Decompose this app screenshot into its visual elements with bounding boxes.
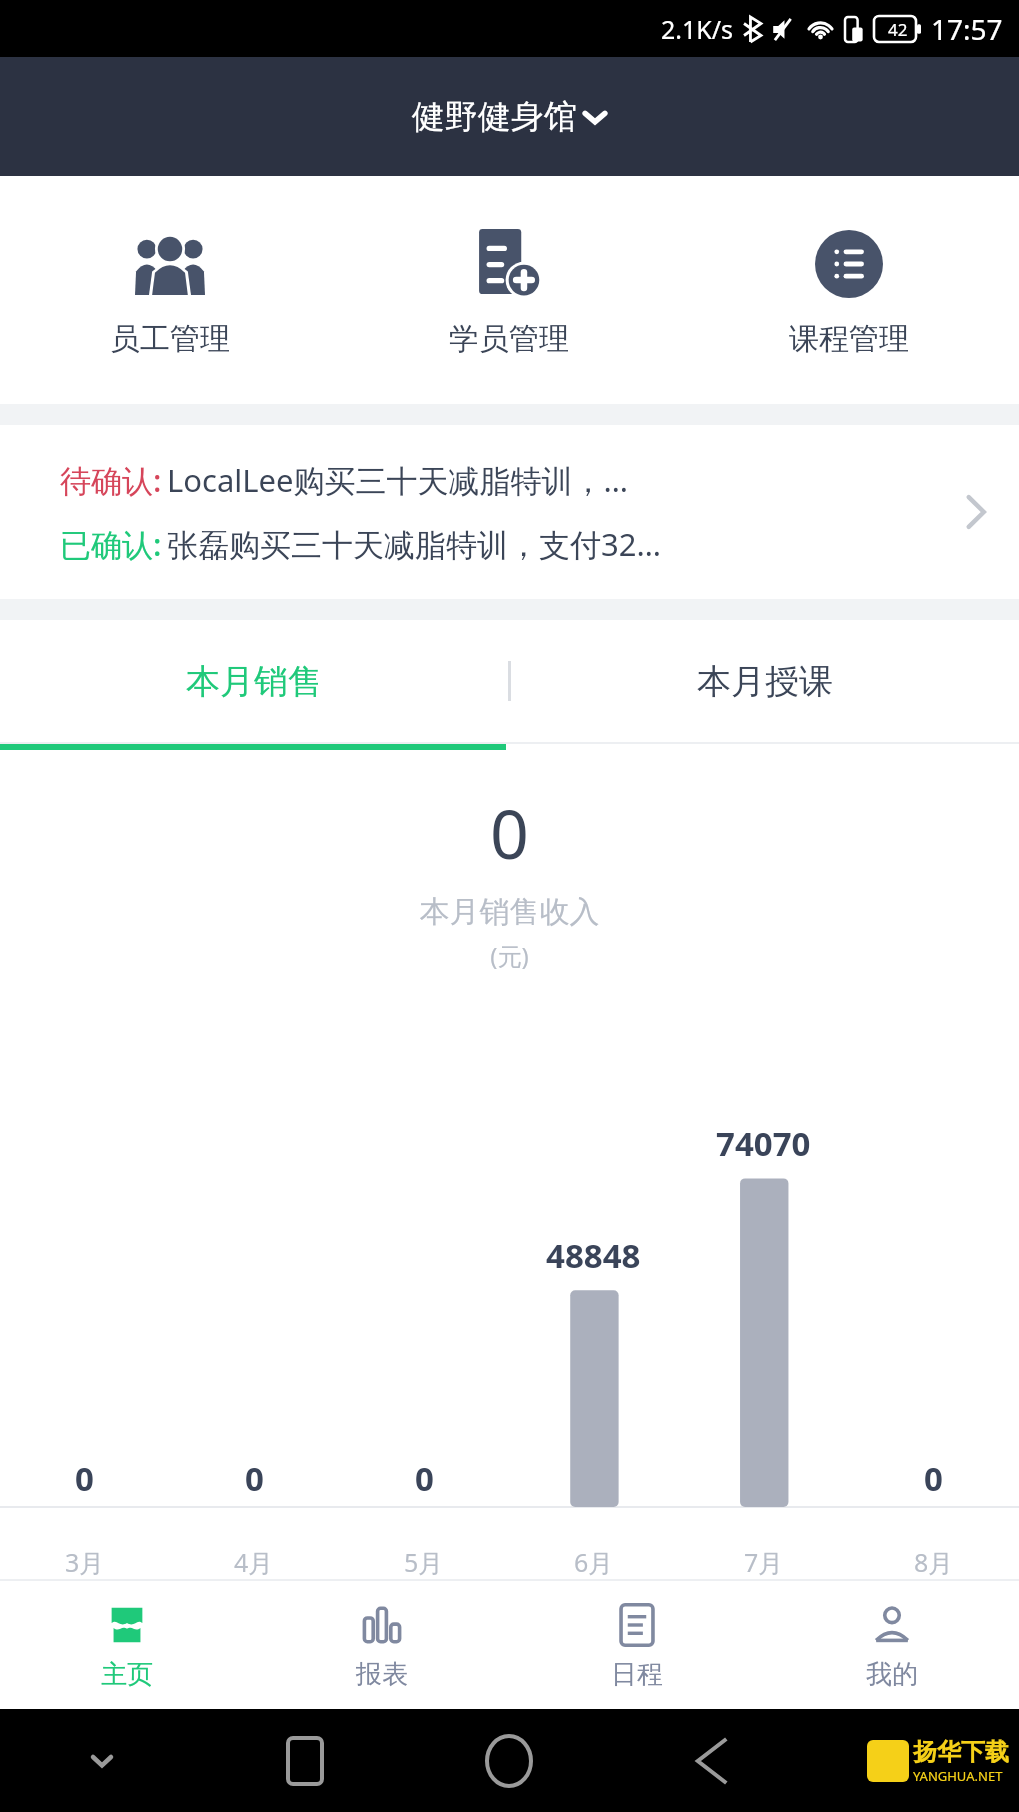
staticText: 扬华下载	[913, 1737, 1009, 1767]
staticText: 17:57	[931, 10, 1003, 48]
staticText: 7月	[744, 1545, 784, 1579]
button[interactable]: 主页	[0, 1581, 254, 1709]
staticText: 3月	[65, 1545, 105, 1579]
button[interactable]: 员工管理	[0, 176, 339, 404]
staticText: YANGHUA.NET	[913, 1767, 1003, 1785]
staticText: 待确认:	[60, 459, 162, 501]
button[interactable]: 报表	[254, 1581, 509, 1709]
staticText: 日程	[611, 1658, 663, 1691]
staticText: 0	[924, 1456, 943, 1501]
staticText: 主页	[101, 1658, 153, 1691]
staticText: 0	[75, 1456, 94, 1501]
staticText: 42	[888, 18, 908, 41]
staticText: (元)	[0, 939, 1019, 972]
staticText: 48848	[546, 1233, 641, 1278]
staticText: 2.1K/s	[661, 12, 734, 46]
other: 返回	[694, 1737, 732, 1785]
staticText: 张磊购买三十天减脂特训，支付32…	[167, 523, 661, 565]
other: 查看更多	[963, 490, 989, 534]
button[interactable]: 日程	[509, 1581, 764, 1709]
staticText: 0	[245, 1456, 264, 1501]
button[interactable]: 健野健身馆	[398, 88, 622, 146]
button[interactable]: 学员管理	[339, 176, 679, 404]
staticText: 报表	[356, 1658, 408, 1691]
staticText: 0	[415, 1456, 434, 1501]
staticText: 5月	[404, 1545, 444, 1579]
staticText: 健野健身馆	[412, 96, 577, 138]
other: 最近任务	[288, 1738, 322, 1784]
staticText: 员工管理	[110, 320, 230, 358]
button[interactable]: 本月授课	[511, 620, 1019, 742]
other: 主屏幕	[487, 1736, 531, 1786]
staticText: 74070	[716, 1121, 811, 1166]
staticText: 本月授课	[697, 660, 833, 703]
staticText: 0	[0, 786, 1019, 879]
button[interactable]: 我的	[764, 1581, 1019, 1709]
other: 收起	[87, 1751, 117, 1771]
staticText: 我的	[866, 1658, 918, 1691]
staticText: 已确认:	[60, 523, 162, 565]
button[interactable]: 本月销售	[0, 620, 508, 742]
staticText: 课程管理	[789, 320, 909, 358]
staticText: 本月销售收入	[0, 893, 1019, 931]
button[interactable]: 待确认:	[0, 425, 1019, 599]
button[interactable]: 课程管理	[679, 176, 1019, 404]
staticText: LocalLee购买三十天减脂特训，…	[167, 459, 629, 501]
staticText: 4月	[234, 1545, 274, 1579]
staticText: 6月	[574, 1545, 614, 1579]
staticText: 8月	[914, 1545, 954, 1579]
staticText: 学员管理	[449, 320, 569, 358]
staticText: 本月销售	[186, 660, 322, 703]
